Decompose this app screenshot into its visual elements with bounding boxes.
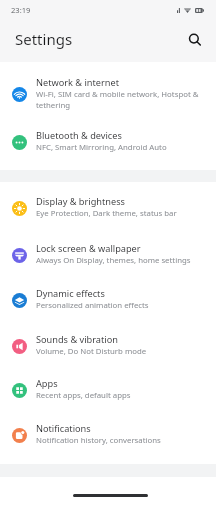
staticText: Settings [15, 29, 73, 49]
button[interactable]: Display & brightness [0, 187, 216, 229]
staticText: NFC, Smart Mirroring, Android Auto [36, 142, 167, 153]
staticText: Dynamic effects [36, 287, 105, 300]
staticText: Bluetooth & devices [36, 129, 122, 142]
button[interactable]: Dynamic effects [0, 279, 216, 321]
staticText: 23:19 [11, 5, 31, 15]
button[interactable]: Apps [0, 369, 216, 411]
button[interactable]: Network & internet [0, 73, 216, 115]
staticText: Notifications [36, 422, 91, 435]
staticText: Network & internet [36, 76, 119, 89]
staticText: Always On Display, themes, home settings [36, 255, 191, 266]
staticText: Volume, Do Not Disturb mode [36, 346, 147, 357]
button[interactable]: Search [182, 27, 208, 53]
button[interactable]: Lock screen & wallpaper [0, 234, 216, 276]
button[interactable]: Sounds & vibration [0, 325, 216, 367]
button[interactable]: Bluetooth & devices [0, 121, 216, 163]
staticText: Notification history, conversations [36, 435, 161, 446]
staticText: tethering [36, 100, 71, 111]
staticText: Apps [36, 377, 58, 390]
staticText: Recent apps, default apps [36, 390, 131, 401]
staticText: Personalized animation effects [36, 300, 149, 311]
staticText: Sounds & vibration [36, 333, 118, 346]
staticText: Wi-Fi, SIM card & mobile network, Hotspo… [36, 89, 199, 100]
button[interactable]: Notifications [0, 414, 216, 456]
staticText: Lock screen & wallpaper [36, 242, 141, 255]
staticText: Eye Protection, Dark theme, status bar [36, 208, 177, 219]
staticText: Display & brightness [36, 195, 125, 208]
